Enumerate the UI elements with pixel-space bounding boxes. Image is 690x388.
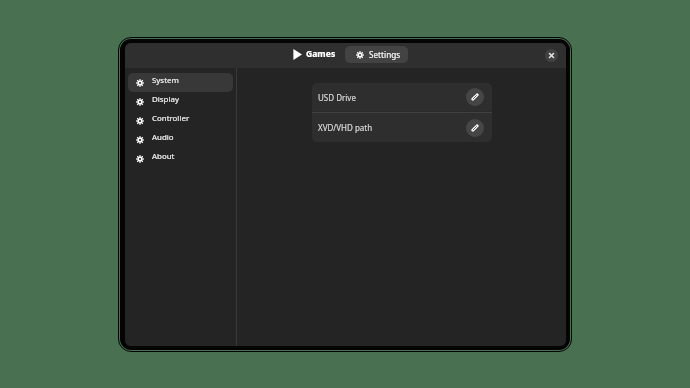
button[interactable]: Display [128,92,233,111]
button[interactable]: Audio [128,130,233,149]
button[interactable]: Settings [345,46,408,63]
staticText: System [152,75,179,86]
button[interactable]: Close [545,49,558,62]
button[interactable]: Games [288,45,341,66]
button[interactable]: Edit [466,119,484,137]
button[interactable]: Controller [128,111,233,130]
staticText: About [152,151,175,162]
staticText: Controller [152,113,190,124]
staticText: USD Drive [318,92,356,103]
button[interactable]: USD Drive [312,83,492,111]
staticText: Audio [152,132,174,143]
staticText: XVD/VHD path [318,122,373,133]
button[interactable]: XVD/VHD path [312,113,492,142]
staticText: Settings [369,49,401,60]
staticText: Games [306,48,336,60]
button[interactable]: System [128,73,233,92]
staticText: Display [152,94,179,105]
button[interactable]: About [128,149,233,168]
button[interactable]: Edit [466,88,484,106]
